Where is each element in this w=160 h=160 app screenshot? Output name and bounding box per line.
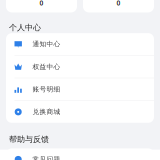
button[interactable]: 通知中心	[6, 33, 154, 55]
button[interactable]: 账号明细	[6, 78, 154, 100]
staticText: 个人中心	[9, 23, 41, 32]
button[interactable]: 兑换商城	[6, 101, 154, 123]
staticText: 兑换商城	[32, 108, 60, 116]
button[interactable]: 常见问题	[6, 148, 154, 160]
staticText: 账号明细	[32, 85, 60, 93]
staticText: 帮助与反馈	[9, 134, 49, 144]
button[interactable]: 0	[83, 0, 154, 12]
button[interactable]: 权益中心	[6, 56, 154, 78]
staticText: 权益中心	[32, 63, 60, 71]
staticText: 0	[39, 0, 43, 7]
staticText: 0	[116, 0, 120, 7]
staticText: 通知中心	[32, 40, 60, 48]
staticText: 常见问题	[32, 155, 60, 160]
button[interactable]: 0	[6, 0, 77, 12]
